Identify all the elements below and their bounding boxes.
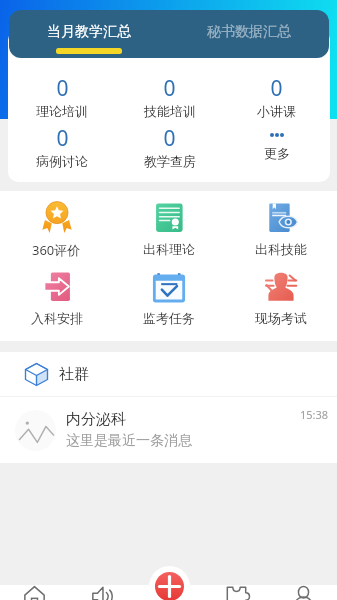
staticText: 监考任务 — [143, 310, 195, 326]
button[interactable]: Add — [155, 572, 184, 600]
button[interactable]: 内分泌科 — [0, 397, 337, 463]
button[interactable]: 当月教学汇总 — [9, 10, 169, 58]
staticText: 病例讨论 — [36, 153, 88, 169]
button[interactable]: Home — [0, 585, 68, 600]
button[interactable]: 0 — [116, 74, 223, 119]
button[interactable]: 0 — [116, 124, 223, 169]
staticText: 15:38 — [300, 407, 329, 422]
staticText: 0 — [270, 74, 283, 103]
staticText: 教学查房 — [144, 153, 196, 169]
staticText: 当月教学汇总 — [47, 23, 131, 41]
button[interactable]: Profile — [270, 585, 337, 600]
button[interactable]: Announcements — [68, 585, 136, 600]
button[interactable]: 0 — [223, 74, 330, 119]
staticText: 这里是最近一条消息 — [66, 432, 192, 450]
button[interactable]: 出科技能 — [225, 199, 337, 257]
button[interactable]: 秘书数据汇总 — [169, 10, 329, 58]
staticText: 出科理论 — [143, 241, 195, 257]
staticText: 社群 — [59, 365, 89, 384]
staticText: 内分泌科 — [66, 410, 126, 429]
button[interactable]: 监考任务 — [113, 268, 225, 326]
staticText: 秘书数据汇总 — [207, 23, 291, 41]
staticText: 0 — [163, 74, 176, 103]
staticText: 技能培训 — [144, 103, 196, 119]
staticText: 0 — [163, 124, 176, 153]
button[interactable]: 现场考试 — [225, 268, 337, 326]
button[interactable]: 0 — [8, 74, 116, 119]
button[interactable]: 出科理论 — [113, 199, 225, 257]
button[interactable]: 0 — [8, 124, 116, 169]
staticText: 0 — [56, 74, 69, 103]
button[interactable]: 社群 — [0, 352, 337, 396]
staticText: 更多 — [264, 145, 290, 161]
staticText: 0 — [56, 124, 69, 153]
staticText: 出科技能 — [255, 241, 307, 257]
staticText: 现场考试 — [255, 310, 307, 326]
staticText: 小讲课 — [257, 103, 296, 119]
staticText: 理论培训 — [36, 103, 88, 119]
button[interactable]: 更多 — [223, 124, 330, 161]
button[interactable]: Apps — [203, 585, 270, 600]
staticText: 入科安排 — [31, 310, 83, 326]
button[interactable]: 入科安排 — [0, 268, 113, 326]
button[interactable]: 360评价 — [0, 199, 113, 259]
staticText: 360评价 — [32, 241, 81, 259]
